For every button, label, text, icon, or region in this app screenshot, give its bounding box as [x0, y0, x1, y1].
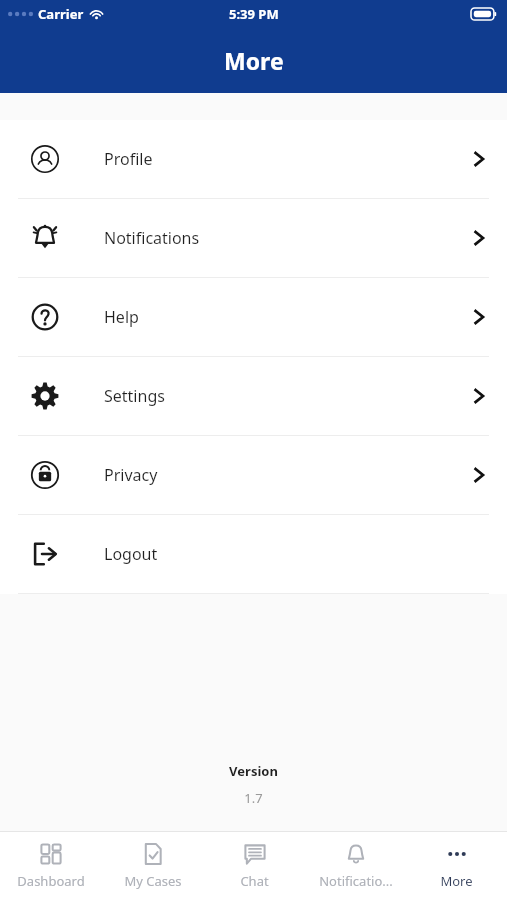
staticText: More: [440, 872, 473, 890]
staticText: Settings: [104, 385, 165, 407]
staticText: My Cases: [124, 872, 182, 890]
staticText: Notifications: [104, 227, 200, 249]
button[interactable]: Help: [0, 278, 507, 356]
staticText: Logout: [104, 543, 158, 565]
button[interactable]: Dashboard: [0, 832, 102, 900]
button[interactable]: Profile: [0, 120, 507, 198]
button[interactable]: More: [406, 832, 507, 900]
staticText: Chat: [240, 872, 269, 890]
button[interactable]: Privacy: [0, 436, 507, 514]
staticText: More: [224, 45, 284, 76]
button[interactable]: Chat: [204, 832, 305, 900]
button[interactable]: Logout: [0, 515, 507, 593]
button[interactable]: My Cases: [102, 832, 204, 900]
staticText: Help: [104, 306, 139, 328]
staticText: 1.7: [244, 789, 263, 807]
staticText: 5:39 PM: [229, 5, 279, 23]
button[interactable]: Settings: [0, 357, 507, 435]
staticText: Carrier: [38, 5, 84, 23]
staticText: Dashboard: [17, 872, 85, 890]
button[interactable]: Notificatio...: [305, 832, 406, 900]
staticText: Privacy: [104, 464, 158, 486]
button[interactable]: Notifications: [0, 199, 507, 277]
staticText: Profile: [104, 148, 153, 170]
staticText: Version: [229, 762, 278, 780]
staticText: Notificatio...: [319, 872, 393, 890]
